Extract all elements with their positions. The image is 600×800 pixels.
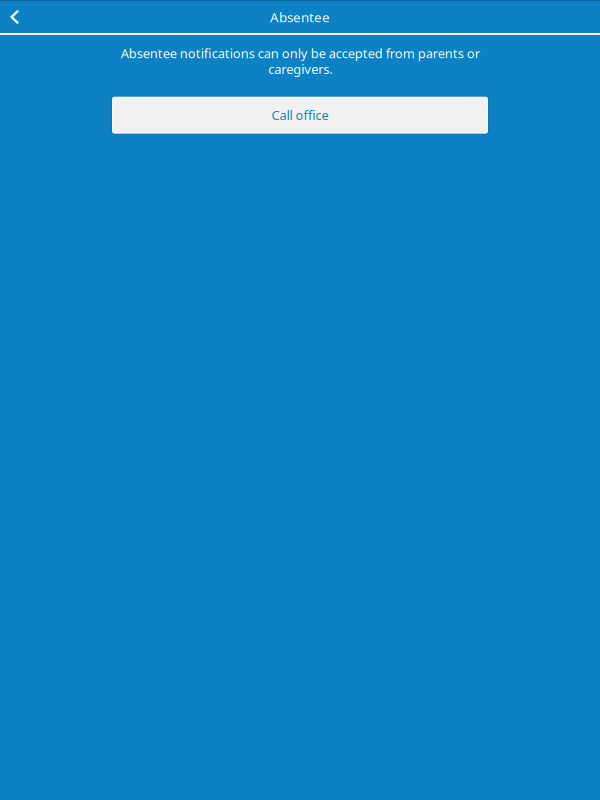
button[interactable]: Call office [111, 96, 489, 135]
staticText: Absentee notifications can only be accep… [120, 45, 479, 78]
staticText: Absentee [270, 8, 330, 26]
button[interactable]: Back [0, 1, 28, 33]
staticText: Call office [271, 106, 328, 124]
